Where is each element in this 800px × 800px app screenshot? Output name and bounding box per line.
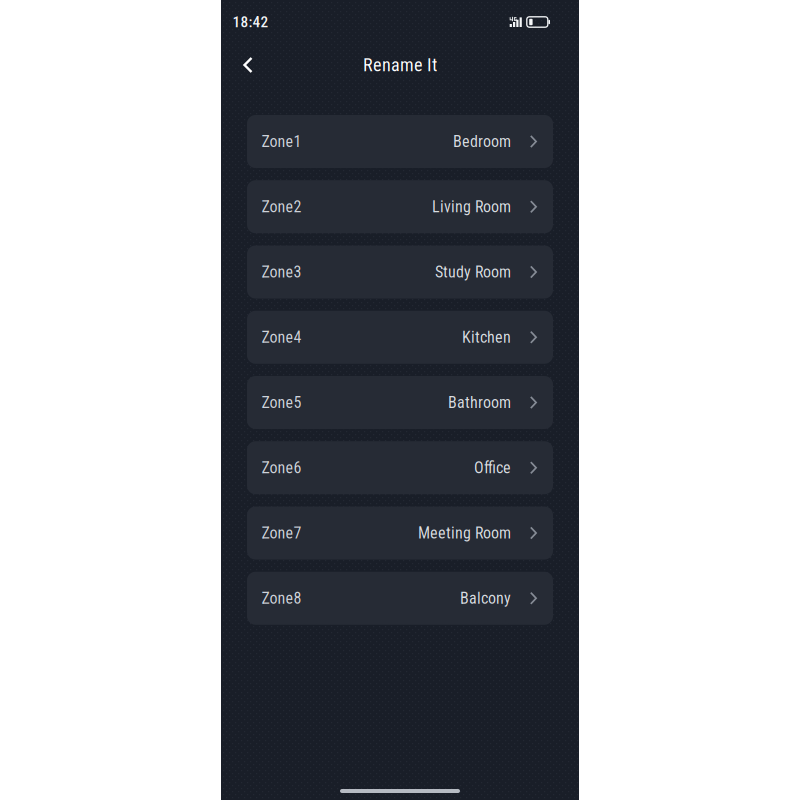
button[interactable]: Zone2 xyxy=(247,180,553,233)
staticText: Study Room xyxy=(435,263,511,281)
button[interactable]: Zone4 xyxy=(247,311,553,364)
button[interactable]: Zone8 xyxy=(247,572,553,625)
button[interactable]: Back xyxy=(226,45,270,85)
staticText: Kitchen xyxy=(462,328,511,347)
staticText: Meeting Room xyxy=(418,524,511,542)
staticText: Zone1 xyxy=(261,132,301,151)
staticText: Zone8 xyxy=(261,589,301,608)
button[interactable]: Zone1 xyxy=(247,115,553,168)
staticText: Zone4 xyxy=(261,328,301,347)
staticText: Rename It xyxy=(363,54,437,76)
staticText: Zone6 xyxy=(261,458,301,477)
staticText: Living Room xyxy=(432,197,511,216)
staticText: Office xyxy=(474,458,511,477)
staticText: Zone5 xyxy=(261,393,301,412)
staticText: 18:42 xyxy=(232,13,268,31)
button[interactable]: Zone7 xyxy=(247,506,553,559)
staticText: Zone3 xyxy=(261,263,301,281)
staticText: Zone2 xyxy=(261,197,301,216)
staticText: Bedroom xyxy=(453,132,511,151)
staticText: Zone7 xyxy=(261,524,301,542)
button[interactable]: Zone5 xyxy=(247,376,553,429)
button[interactable]: Zone6 xyxy=(247,441,553,494)
staticText: Bathroom xyxy=(448,393,511,412)
staticText: Balcony xyxy=(460,589,511,608)
button[interactable]: Zone3 xyxy=(247,245,553,298)
